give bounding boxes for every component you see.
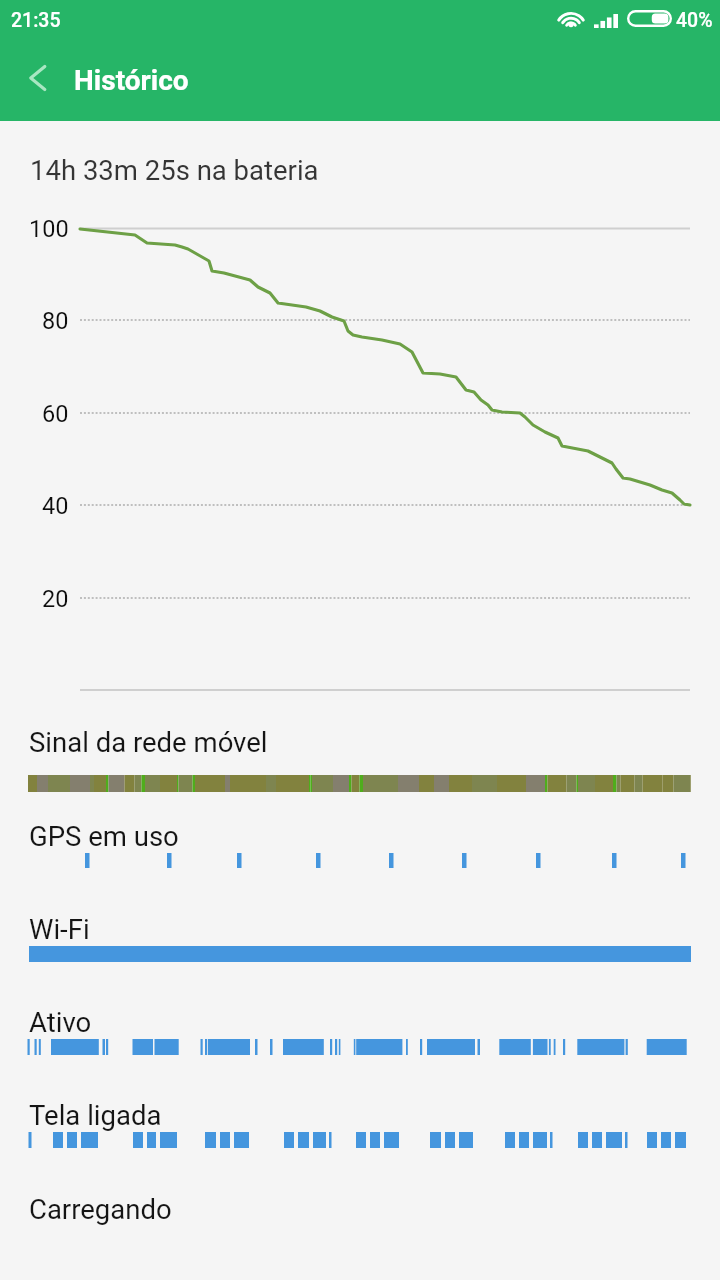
staticText: 14h 33m 25s na bateria (30, 154, 319, 186)
staticText: GPS em uso (29, 820, 179, 852)
staticText: 60 (42, 400, 69, 428)
staticText: Wi-Fi (29, 913, 90, 945)
button[interactable]: Voltar (7, 48, 67, 108)
staticText: 40% (676, 9, 713, 32)
staticText: 80 (42, 307, 69, 335)
staticText: Histórico (74, 64, 189, 97)
staticText: 20 (42, 585, 69, 613)
staticText: Tela ligada (29, 1099, 162, 1131)
staticText: Sinal da rede móvel (29, 726, 268, 758)
staticText: 40 (42, 492, 69, 520)
staticText: Carregando (29, 1193, 172, 1225)
staticText: 21:35 (11, 9, 61, 32)
staticText: Ativo (29, 1006, 92, 1038)
staticText: 100 (29, 215, 69, 243)
